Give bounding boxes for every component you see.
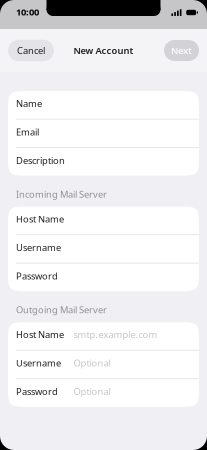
button[interactable]: Password bbox=[8, 379, 199, 407]
staticText: Next bbox=[171, 44, 192, 57]
staticText: Name bbox=[16, 97, 42, 109]
staticText: 10:00 bbox=[16, 6, 39, 18]
button[interactable]: Username bbox=[8, 351, 199, 378]
staticText: Outgoing Mail Server bbox=[16, 303, 107, 316]
button[interactable]: Description bbox=[8, 148, 199, 176]
staticText: Password bbox=[16, 270, 58, 282]
staticText: Description bbox=[16, 154, 65, 166]
button[interactable]: Cancel bbox=[8, 40, 54, 61]
staticText: Incoming Mail Server bbox=[16, 188, 107, 200]
staticText: smtp.example.com bbox=[73, 328, 157, 341]
staticText: Email bbox=[16, 126, 39, 138]
button[interactable]: Host Name bbox=[8, 322, 199, 350]
staticText: Optional bbox=[73, 385, 110, 398]
staticText: Host Name bbox=[16, 328, 64, 341]
button[interactable]: Host Name bbox=[8, 207, 199, 234]
button[interactable]: Next bbox=[164, 40, 199, 61]
staticText: Optional bbox=[73, 357, 110, 369]
staticText: Cancel bbox=[17, 44, 45, 57]
staticText: Username bbox=[16, 357, 61, 369]
button[interactable]: Username bbox=[8, 235, 199, 263]
staticText: Username bbox=[16, 241, 61, 254]
staticText: Password bbox=[16, 385, 58, 398]
button[interactable]: Email bbox=[8, 119, 199, 147]
button[interactable]: Name bbox=[8, 91, 199, 119]
staticText: New Account bbox=[73, 44, 133, 57]
staticText: Host Name bbox=[16, 213, 64, 225]
button[interactable]: Password bbox=[8, 264, 199, 291]
